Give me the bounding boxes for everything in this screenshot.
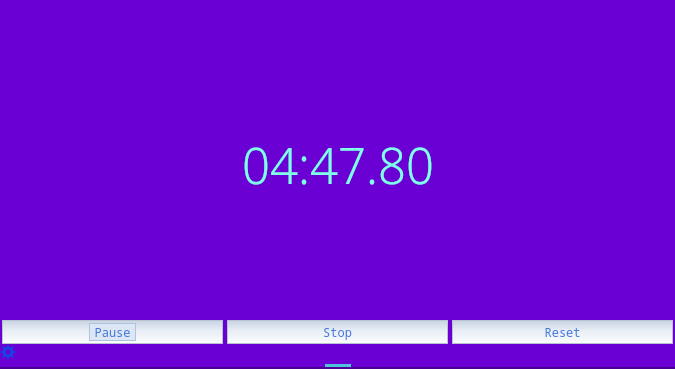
button[interactable]: Pause (2, 320, 223, 344)
button[interactable]: Stop (227, 320, 448, 344)
staticText: Pause (94, 324, 131, 340)
button[interactable]: Reset (452, 320, 673, 344)
staticText: 04:47.80 (242, 132, 434, 199)
button[interactable]: Settings (1, 345, 15, 359)
staticText: Stop (323, 324, 352, 340)
staticText: Reset (544, 324, 581, 340)
